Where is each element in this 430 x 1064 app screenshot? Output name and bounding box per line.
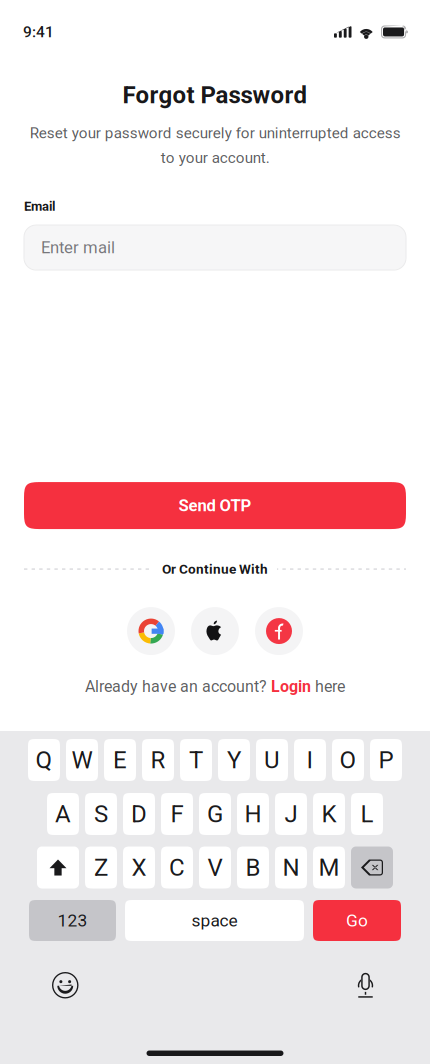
staticText: B [245, 853, 260, 881]
button[interactable]: Dictation [351, 966, 380, 1005]
button[interactable]: M [313, 846, 345, 888]
staticText: K [321, 800, 336, 828]
button[interactable]: O [332, 739, 364, 781]
staticText: Send OTP [178, 496, 251, 515]
staticText: U [264, 746, 280, 774]
button[interactable]: V [199, 846, 231, 888]
button[interactable]: Emoji keyboard [45, 965, 85, 1005]
button[interactable]: T [180, 739, 212, 781]
staticText: space [191, 910, 237, 931]
staticText: O [339, 746, 356, 774]
staticText: 123 [57, 910, 87, 931]
button[interactable]: 123 [29, 900, 116, 941]
button[interactable]: Continue with Apple [191, 607, 239, 655]
staticText: 9:41 [23, 23, 54, 41]
button[interactable]: Enter mail [24, 225, 406, 270]
staticText: Already have an account? [85, 677, 271, 696]
button[interactable]: K [313, 793, 345, 835]
staticText: Reset your password securely for uninter… [29, 124, 400, 167]
staticText: Y [227, 746, 241, 774]
button[interactable]: H [237, 793, 269, 835]
staticText: F [170, 800, 183, 828]
staticText: W [71, 746, 92, 774]
button[interactable]: Send OTP [24, 482, 406, 529]
button[interactable]: Continue with Facebook [255, 607, 303, 655]
staticText: P [378, 746, 393, 774]
button[interactable]: E [104, 739, 136, 781]
button[interactable]: Go [313, 900, 401, 941]
button[interactable]: Delete [351, 846, 393, 888]
button[interactable]: B [237, 846, 269, 888]
button[interactable]: G [199, 793, 231, 835]
button[interactable]: Shift [37, 846, 79, 888]
button[interactable]: J [275, 793, 307, 835]
button[interactable]: L [351, 793, 383, 835]
button[interactable]: S [85, 793, 117, 835]
staticText: N [282, 853, 299, 881]
staticText: Enter mail [41, 238, 115, 257]
staticText: L [360, 800, 373, 828]
button[interactable]: A [47, 793, 79, 835]
button[interactable]: X [123, 846, 155, 888]
button[interactable]: F [161, 793, 193, 835]
staticText: V [207, 853, 222, 881]
button[interactable]: Already have an account? [85, 677, 345, 696]
button[interactable]: U [256, 739, 288, 781]
button[interactable]: Z [85, 846, 117, 888]
staticText: R [150, 746, 165, 774]
staticText: J [284, 800, 297, 828]
staticText: M [318, 853, 339, 881]
button[interactable]: C [161, 846, 193, 888]
button[interactable]: Continue with Google [127, 607, 175, 655]
staticText: H [244, 800, 261, 828]
staticText: D [131, 800, 147, 828]
staticText: G [207, 800, 223, 828]
staticText: Login [271, 677, 311, 696]
staticText: I [306, 746, 313, 774]
staticText: C [169, 853, 185, 881]
staticText: A [55, 800, 71, 828]
staticText: Email [24, 199, 55, 214]
button[interactable]: space [125, 900, 304, 941]
staticText: S [94, 800, 108, 828]
button[interactable]: Q [28, 739, 60, 781]
button[interactable]: R [142, 739, 174, 781]
button[interactable]: W [66, 739, 98, 781]
button[interactable]: D [123, 793, 155, 835]
staticText: T [189, 746, 203, 774]
button[interactable]: Y [218, 739, 250, 781]
staticText: Q [35, 746, 52, 774]
staticText: Or Continue With [162, 561, 268, 577]
button[interactable]: P [370, 739, 402, 781]
staticText: Go [346, 910, 368, 931]
button[interactable]: N [275, 846, 307, 888]
staticText: here [311, 677, 345, 696]
staticText: Z [94, 853, 108, 881]
button[interactable]: I [294, 739, 326, 781]
staticText: Forgot Password [122, 81, 307, 109]
staticText: E [113, 746, 127, 774]
staticText: X [131, 853, 146, 881]
